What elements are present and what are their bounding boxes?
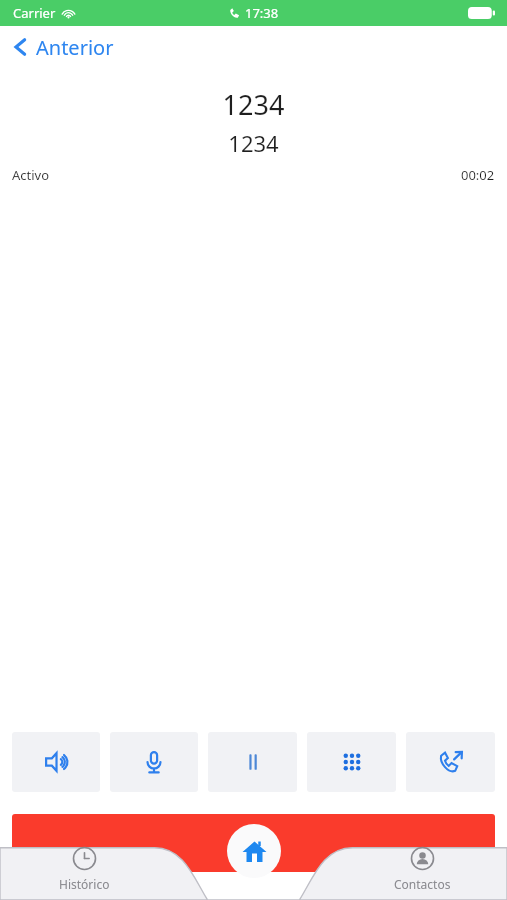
button[interactable]: Home xyxy=(227,824,281,878)
staticText: Contactos xyxy=(394,876,451,892)
button[interactable]: Mute microphone xyxy=(110,732,198,792)
button[interactable]: End call xyxy=(12,814,495,872)
button[interactable]: Transfer call xyxy=(406,732,495,792)
button[interactable]: Contactos xyxy=(338,822,507,900)
staticText: 1234 xyxy=(0,128,507,158)
staticText: 1234 xyxy=(0,86,507,123)
button[interactable]: Keypad xyxy=(307,732,396,792)
staticText: Carrier xyxy=(13,4,56,22)
staticText: 00:02 xyxy=(461,166,495,184)
button[interactable]: Anterior xyxy=(0,26,507,68)
staticText: Histórico xyxy=(59,876,110,892)
button[interactable]: Histórico xyxy=(0,822,169,900)
button[interactable]: Speaker xyxy=(12,732,100,792)
staticText: 17:38 xyxy=(245,4,279,22)
staticText: Activo xyxy=(12,166,50,184)
button[interactable]: Hold call xyxy=(208,732,297,792)
staticText: Anterior xyxy=(36,34,114,61)
